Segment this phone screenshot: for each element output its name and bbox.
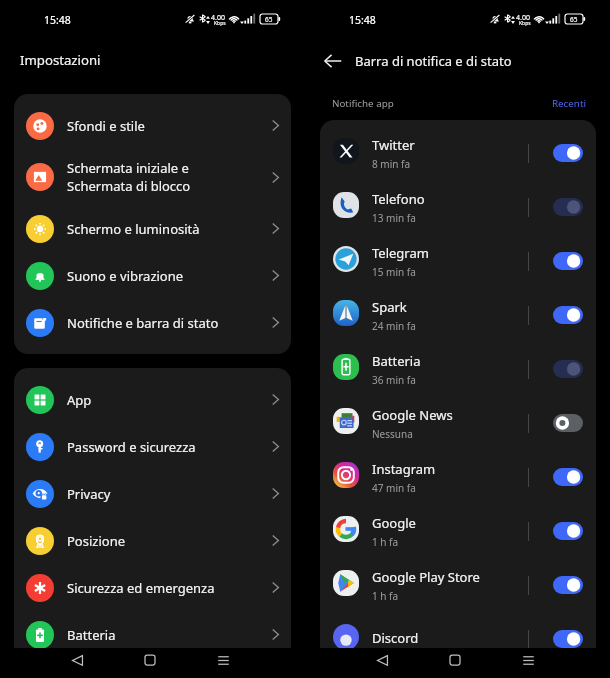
button[interactable]: Schermata iniziale e bbox=[14, 149, 291, 205]
staticText: Twitter bbox=[372, 136, 415, 154]
button[interactable]: Toggle bbox=[553, 252, 583, 270]
button[interactable]: Password e sicurezza bbox=[14, 423, 291, 470]
button[interactable]: Telefono bbox=[320, 178, 596, 232]
button[interactable]: Suono e vibrazione bbox=[14, 252, 291, 299]
staticText: Google Play Store bbox=[372, 568, 480, 586]
button[interactable]: Spark bbox=[320, 286, 596, 340]
button[interactable]: Toggle bbox=[553, 468, 583, 486]
staticText: Google bbox=[372, 514, 416, 532]
staticText: Privacy bbox=[67, 485, 111, 503]
button[interactable]: App bbox=[14, 376, 291, 423]
button[interactable]: Recents bbox=[201, 645, 245, 675]
staticText: Suono e vibrazione bbox=[67, 267, 184, 285]
staticText: 15:48 bbox=[44, 13, 71, 27]
staticText: Barra di notifica e di stato bbox=[355, 52, 512, 70]
staticText: Discord bbox=[372, 629, 419, 647]
button[interactable]: Back bbox=[360, 645, 404, 675]
button[interactable]: Twitter bbox=[320, 124, 596, 178]
button[interactable]: Back bbox=[320, 48, 346, 74]
staticText: 15:48 bbox=[349, 13, 376, 27]
button[interactable]: Google News bbox=[320, 394, 596, 448]
button[interactable]: Google Play Store bbox=[320, 556, 596, 610]
staticText: 65 bbox=[265, 15, 273, 24]
staticText: 47 min fa bbox=[372, 481, 416, 495]
button[interactable]: Toggle bbox=[553, 360, 583, 378]
staticText: Recenti bbox=[552, 97, 586, 110]
staticText: Sicurezza ed emergenza bbox=[67, 579, 215, 597]
button[interactable]: Notifiche e barra di stato bbox=[14, 299, 291, 346]
staticText: Batteria bbox=[67, 626, 116, 644]
button[interactable]: Recenti bbox=[552, 97, 586, 110]
button[interactable]: Toggle bbox=[553, 522, 583, 540]
staticText: 36 min fa bbox=[372, 373, 416, 387]
staticText: App bbox=[67, 391, 92, 409]
button[interactable]: Sicurezza ed emergenza bbox=[14, 564, 291, 611]
staticText: Telegram bbox=[372, 244, 429, 262]
staticText: 1 h fa bbox=[372, 535, 399, 549]
button[interactable]: Toggle bbox=[553, 576, 583, 594]
staticText: 24 min fa bbox=[372, 319, 416, 333]
staticText: Kbps bbox=[519, 20, 531, 27]
button[interactable]: Home bbox=[128, 645, 172, 675]
staticText: Impostazioni bbox=[20, 51, 101, 69]
button[interactable]: Home bbox=[433, 645, 477, 675]
staticText: 13 min fa bbox=[372, 211, 416, 225]
staticText: Sfondi e stile bbox=[67, 117, 145, 135]
staticText: 8 min fa bbox=[372, 157, 411, 171]
staticText: Posizione bbox=[67, 532, 126, 550]
button[interactable]: Google bbox=[320, 502, 596, 556]
button[interactable]: Batteria bbox=[14, 611, 291, 658]
staticText: Schermata iniziale e bbox=[67, 159, 189, 177]
staticText: Password e sicurezza bbox=[67, 438, 196, 456]
button[interactable]: Back bbox=[55, 645, 99, 675]
staticText: Notifiche app bbox=[332, 97, 394, 110]
button[interactable]: Posizione bbox=[14, 517, 291, 564]
staticText: Instagram bbox=[372, 460, 436, 478]
staticText: Google News bbox=[372, 406, 453, 424]
staticText: 1 h fa bbox=[372, 589, 399, 603]
button[interactable]: Discord bbox=[320, 610, 596, 664]
staticText: Telefono bbox=[372, 190, 425, 208]
button[interactable]: Toggle bbox=[553, 198, 583, 216]
staticText: 15 min fa bbox=[372, 265, 416, 279]
button[interactable]: Instagram bbox=[320, 448, 596, 502]
staticText: Batteria bbox=[372, 352, 421, 370]
button[interactable]: Toggle bbox=[553, 630, 583, 648]
staticText: 4.00 bbox=[211, 13, 225, 23]
staticText: Schermo e luminosità bbox=[67, 220, 200, 238]
button[interactable]: Sfondi e stile bbox=[14, 102, 291, 149]
staticText: Schermata di blocco bbox=[67, 177, 191, 195]
staticText: Notifiche e barra di stato bbox=[67, 314, 219, 332]
staticText: Nessuna bbox=[372, 427, 413, 441]
button[interactable]: Telegram bbox=[320, 232, 596, 286]
button[interactable]: Toggle bbox=[553, 144, 583, 162]
button[interactable]: Recents bbox=[506, 645, 550, 675]
button[interactable]: Batteria bbox=[320, 340, 596, 394]
staticText: Kbps bbox=[214, 20, 226, 27]
button[interactable]: Toggle bbox=[553, 414, 583, 432]
staticText: 4.00 bbox=[516, 13, 530, 23]
button[interactable]: Privacy bbox=[14, 470, 291, 517]
staticText: Spark bbox=[372, 298, 407, 316]
button[interactable]: Schermo e luminosità bbox=[14, 205, 291, 252]
button[interactable]: Toggle bbox=[553, 306, 583, 324]
staticText: 65 bbox=[570, 15, 578, 24]
